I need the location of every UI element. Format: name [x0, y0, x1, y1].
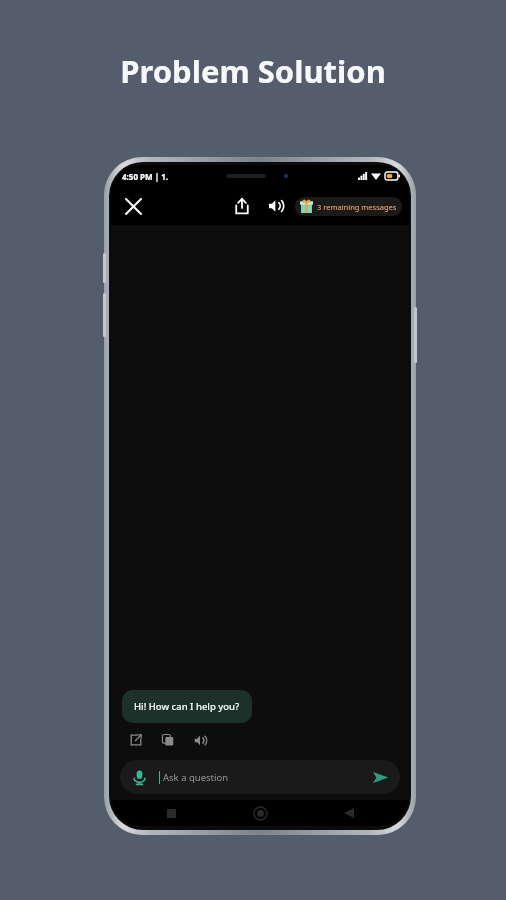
button[interactable]: Recents [159, 801, 183, 825]
staticText: Ask a question [163, 771, 229, 784]
button[interactable]: Share [227, 191, 257, 221]
button[interactable]: Copy [156, 728, 180, 752]
button[interactable]: Home [248, 801, 272, 825]
staticText: 4:50 PM | 1. [122, 171, 168, 182]
button[interactable]: 3 remaining messages [295, 197, 402, 216]
button[interactable]: Send [369, 766, 391, 788]
other: Voice input [129, 767, 149, 787]
button[interactable]: Read aloud [188, 728, 212, 752]
button[interactable]: Sound [261, 191, 291, 221]
button[interactable]: Hi! How can I help you? [122, 690, 252, 723]
button[interactable]: Open [124, 728, 148, 752]
staticText: Hi! How can I help you? [134, 700, 240, 713]
staticText: 3 remaining messages [317, 202, 397, 212]
button[interactable]: Voice input [120, 760, 400, 794]
button[interactable]: Back [337, 801, 361, 825]
button[interactable]: Close [117, 190, 149, 222]
staticText: Problem Solution [120, 50, 386, 92]
